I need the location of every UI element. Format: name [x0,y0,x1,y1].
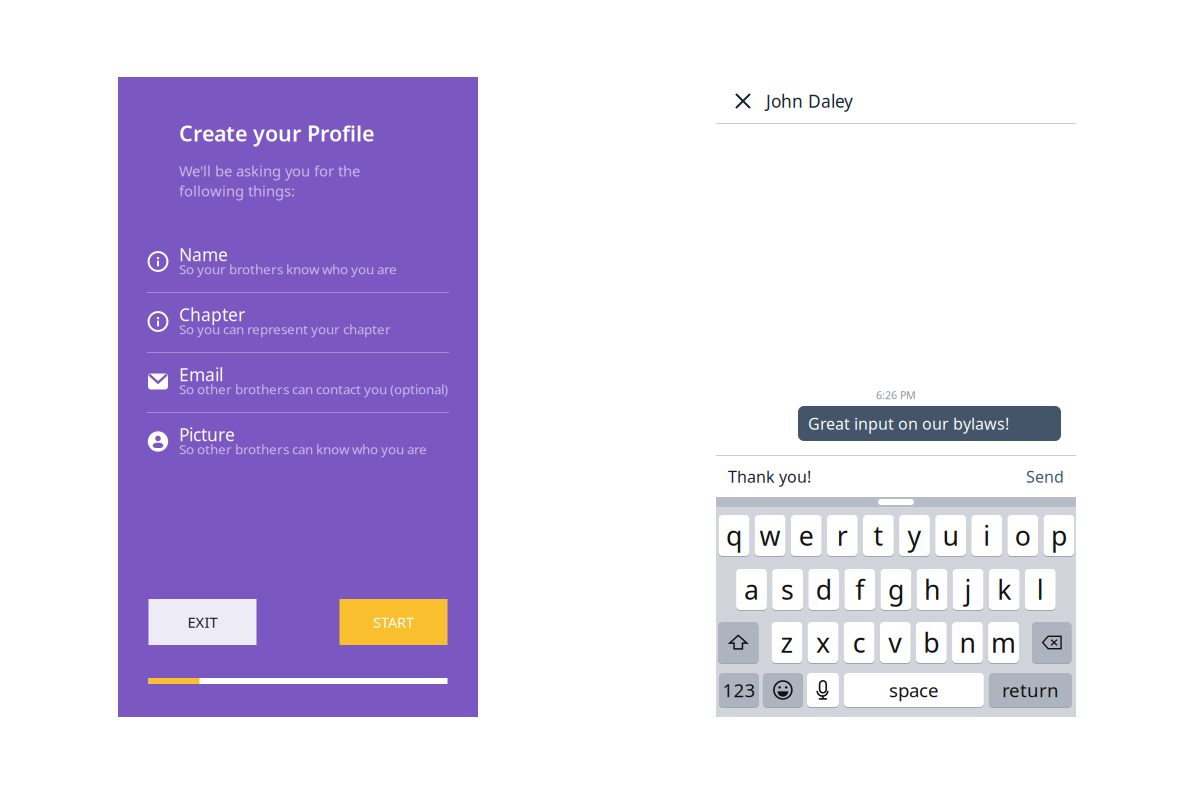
button[interactable]: g [880,569,911,610]
staticText: Thank you! [728,466,811,487]
button[interactable]: space [844,673,984,707]
button[interactable]: p [1043,515,1074,556]
button[interactable]: Name [147,232,453,292]
staticText: j [965,572,972,607]
staticText: 123 [722,678,755,702]
button[interactable]: j [953,569,983,610]
button[interactable]: 123 [719,673,759,707]
button[interactable]: EXIT [148,599,256,645]
button[interactable]: START [339,599,447,645]
button[interactable]: f [844,569,875,610]
button[interactable]: z [771,622,802,663]
staticText: f [855,572,864,607]
staticText: START [373,612,414,632]
button[interactable]: l [1025,569,1056,610]
staticText: p [1051,518,1067,553]
button[interactable]: Picture [147,412,453,472]
staticText: b [923,625,939,660]
staticText: So other brothers can know who you are [179,440,427,458]
staticText: Great input on our bylaws! [808,413,1009,434]
button[interactable]: Chapter [147,292,453,352]
staticText: We'll be asking you for the following th… [179,161,360,200]
staticText: return [1002,678,1059,702]
staticText: s [781,572,794,607]
button[interactable]: t [863,515,894,556]
button[interactable]: a [736,569,767,610]
staticText: Send [1026,466,1064,487]
button[interactable]: c [844,622,875,663]
staticText: Chapter [179,303,245,326]
staticText: Email [179,363,223,386]
staticText: y [907,518,921,553]
staticText: Picture [179,423,235,446]
button[interactable]: Send [1026,466,1064,487]
button[interactable]: u [935,515,966,556]
button[interactable]: x [808,622,838,663]
staticText: John Daley [766,89,853,112]
button[interactable]: v [880,622,911,663]
staticText: h [924,572,940,607]
staticText: c [853,625,866,660]
staticText: Name [179,243,228,266]
button[interactable]: Emoji [763,673,803,707]
staticText: So other brothers can contact you (optio… [179,380,448,398]
staticText: m [991,625,1016,660]
button[interactable]: Email [147,352,453,412]
staticText: u [943,518,959,553]
button[interactable]: h [917,569,947,610]
staticText: t [873,518,883,553]
staticText: z [780,625,793,660]
staticText: Create your Profile [179,119,374,147]
staticText: a [744,572,759,607]
staticText: 6:26 PM [876,388,916,402]
button[interactable]: m [988,622,1019,663]
button[interactable]: n [952,622,983,663]
staticText: So you can represent your chapter [179,320,391,338]
button[interactable]: Close [726,79,760,123]
staticText: space [889,678,939,702]
staticText: q [726,518,742,553]
staticText: e [799,518,814,553]
staticText: v [888,625,902,660]
staticText: g [888,572,904,607]
button[interactable]: return [989,673,1072,707]
button[interactable]: Shift [718,622,758,663]
button[interactable]: i [971,515,1002,556]
button[interactable]: y [899,515,930,556]
button[interactable]: Delete [1032,622,1071,663]
staticText: r [837,518,848,553]
staticText: x [816,625,830,660]
staticText: i [983,518,990,553]
staticText: w [760,518,781,553]
staticText: So your brothers know who you are [179,260,397,278]
button[interactable]: r [827,515,858,556]
button[interactable]: Dictation [807,673,839,707]
staticText: o [1015,518,1031,553]
button[interactable]: k [989,569,1020,610]
button[interactable]: e [791,515,822,556]
button[interactable]: w [755,515,785,556]
staticText: d [816,572,832,607]
button[interactable]: s [772,569,803,610]
staticText: n [959,625,975,660]
button[interactable]: q [719,515,749,556]
staticText: EXIT [187,612,217,632]
staticText: l [1037,572,1044,607]
button[interactable]: d [808,569,839,610]
staticText: k [997,572,1011,607]
button[interactable]: o [1007,515,1038,556]
button[interactable]: b [916,622,947,663]
